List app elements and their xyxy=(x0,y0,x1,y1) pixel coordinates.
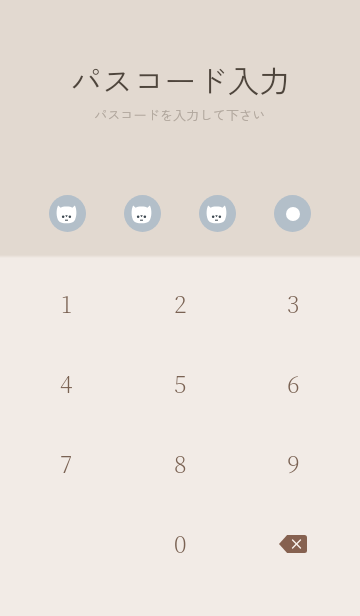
staticText: 5 xyxy=(174,367,187,400)
staticText: パスコードを入力して下さい xyxy=(94,105,266,124)
button[interactable]: 3 xyxy=(249,259,337,347)
staticText: 1 xyxy=(61,287,72,320)
button[interactable]: 5 xyxy=(136,339,224,427)
button[interactable]: 8 xyxy=(136,419,224,507)
button[interactable]: 6 xyxy=(249,339,337,427)
button[interactable]: 2 xyxy=(136,259,224,347)
button[interactable]: Backspace xyxy=(249,499,337,587)
staticText: 4 xyxy=(60,367,73,400)
staticText: 2 xyxy=(174,287,187,320)
button[interactable]: 1 xyxy=(22,259,110,347)
staticText: 7 xyxy=(60,447,73,480)
button[interactable]: 0 xyxy=(136,499,224,587)
staticText: 6 xyxy=(287,367,300,400)
button[interactable]: 4 xyxy=(22,339,110,427)
staticText: パスコード入力 xyxy=(70,56,291,102)
button[interactable]: 9 xyxy=(249,419,337,507)
staticText: 3 xyxy=(287,287,300,320)
staticText: 9 xyxy=(287,447,300,480)
button[interactable]: 7 xyxy=(22,419,110,507)
staticText: 0 xyxy=(174,527,187,560)
staticText: 8 xyxy=(174,447,187,480)
